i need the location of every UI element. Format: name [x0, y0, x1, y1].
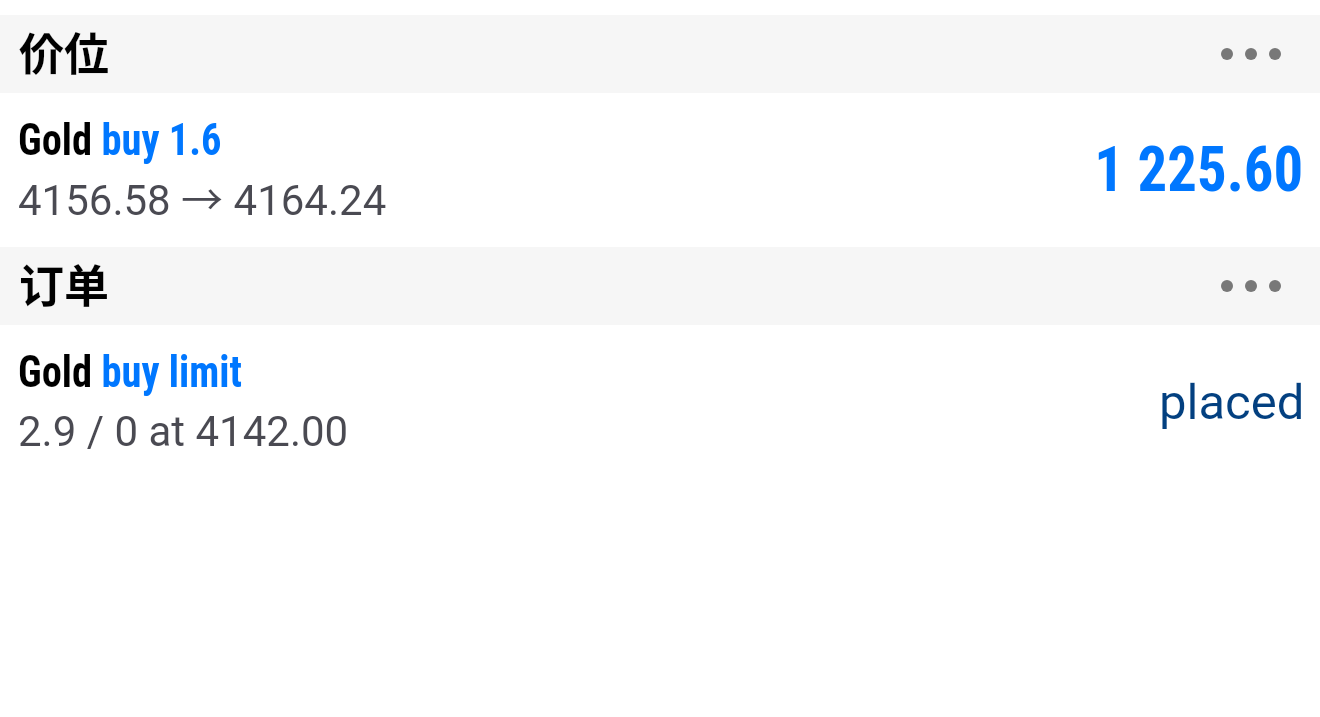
staticText: 订单	[19, 251, 110, 316]
staticText: 1 225.60	[1094, 133, 1304, 207]
staticText: Gold buy 1.6	[18, 114, 222, 166]
staticText: 价位	[19, 19, 110, 84]
button[interactable]: Orders options	[1199, 247, 1320, 325]
button[interactable]: Gold buy 1.6	[0, 93, 1320, 247]
staticText: 2.9 / 0 at 4142.00	[18, 407, 349, 456]
button[interactable]: Gold buy limit	[0, 325, 1320, 479]
staticText: placed	[1159, 374, 1305, 431]
staticText: 4156.58 → 4164.24	[18, 166, 387, 227]
button[interactable]: Quotes options	[1199, 15, 1320, 93]
staticText: Gold buy limit	[18, 346, 242, 398]
